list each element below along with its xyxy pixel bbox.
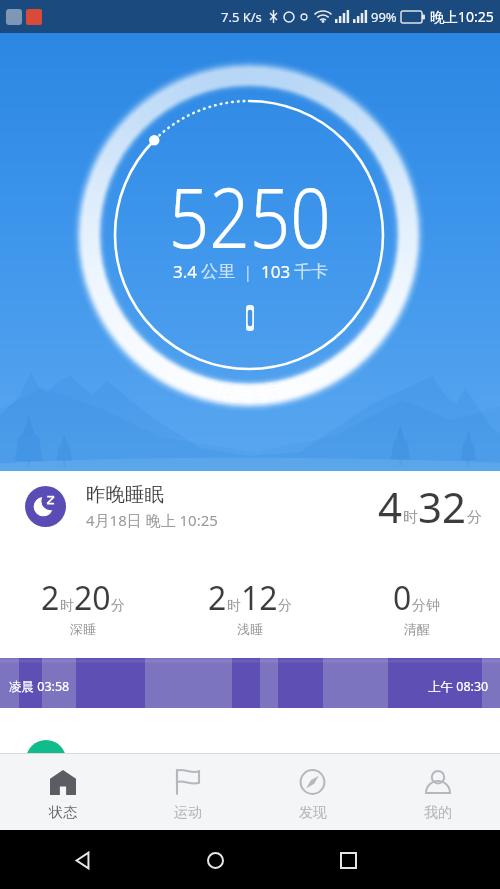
staticText: 时 xyxy=(227,597,241,615)
staticText: 5250 xyxy=(169,160,331,272)
staticText: 99% xyxy=(371,8,397,26)
staticText: 分 xyxy=(111,597,125,615)
staticText: 状态 xyxy=(49,804,77,822)
staticText: 4 xyxy=(378,478,403,535)
staticText: 晚上10:25 xyxy=(430,7,494,26)
staticText: 12 xyxy=(241,576,278,620)
staticText: 分 xyxy=(467,508,482,527)
staticText: 7.5 K/s xyxy=(221,8,262,26)
staticText: 3.4 xyxy=(173,260,198,283)
button[interactable]: 我的 xyxy=(375,753,500,830)
staticText: 时 xyxy=(403,508,418,527)
button[interactable]: 状态 xyxy=(0,753,125,830)
staticText: 运动 xyxy=(174,804,202,822)
staticText: 32 xyxy=(418,478,467,535)
button[interactable]: Home xyxy=(193,838,237,882)
staticText: 4月18日 晚上 10:25 xyxy=(86,510,218,530)
button[interactable]: Recents xyxy=(326,838,370,882)
staticText: 清醒 xyxy=(404,621,430,637)
staticText: 浅睡 xyxy=(237,621,263,637)
button[interactable]: 运动 xyxy=(125,753,250,830)
staticText: 深睡 xyxy=(70,621,96,637)
staticText: 0 xyxy=(393,576,412,620)
staticText: 时 xyxy=(60,597,74,615)
staticText: 发现 xyxy=(299,804,327,822)
staticText: 上午 08:30 xyxy=(428,678,489,695)
staticText: 103 xyxy=(261,260,291,283)
button[interactable]: Back xyxy=(60,838,104,882)
staticText: 公里 xyxy=(201,261,235,282)
staticText: 2 xyxy=(41,576,60,620)
staticText: 我的 xyxy=(424,804,452,822)
staticText: 20 xyxy=(74,576,111,620)
staticText: 凌晨 03:58 xyxy=(9,678,70,695)
button[interactable]: 凌晨 03:58 xyxy=(0,658,500,708)
staticText: 昨晚睡眠 xyxy=(86,482,164,507)
button[interactable]: 昨晚睡眠 xyxy=(0,471,500,541)
staticText: 2 xyxy=(208,576,227,620)
button[interactable]: 发现 xyxy=(250,753,375,830)
staticText: | xyxy=(243,260,253,283)
staticText: 千卡 xyxy=(294,261,328,282)
staticText: 分钟 xyxy=(412,597,440,615)
staticText: 分 xyxy=(278,597,292,615)
